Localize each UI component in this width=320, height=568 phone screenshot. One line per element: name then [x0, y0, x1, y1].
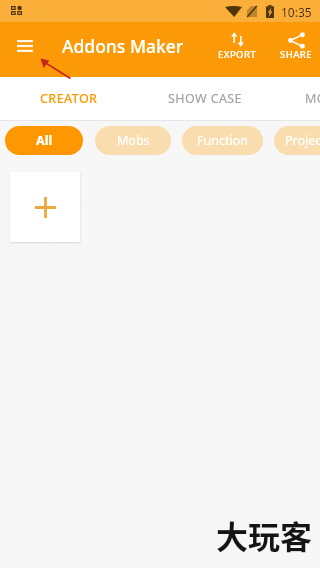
- button[interactable]: MOD MAKER: [277, 77, 320, 121]
- staticText: Projectile: [285, 132, 320, 149]
- staticText: Mobs: [117, 132, 150, 149]
- button[interactable]: Export: [209, 22, 265, 77]
- staticText: SHOW CASE: [168, 90, 242, 107]
- staticText: Function: [197, 132, 248, 149]
- staticText: CREATOR: [40, 90, 98, 107]
- staticText: MOD MAKER: [305, 90, 320, 107]
- staticText: SHARE: [280, 48, 312, 61]
- button[interactable]: Open navigation drawer: [8, 29, 42, 63]
- button[interactable]: CREATOR: [0, 77, 137, 121]
- staticText: 大玩客: [216, 512, 313, 558]
- button[interactable]: Create new addon: [10, 172, 80, 242]
- button[interactable]: All: [5, 126, 83, 155]
- button[interactable]: Share: [268, 22, 320, 77]
- button[interactable]: Mobs: [95, 126, 171, 155]
- button[interactable]: Function: [182, 126, 263, 155]
- button[interactable]: Projectile: [274, 126, 320, 155]
- staticText: All: [36, 132, 53, 149]
- staticText: 10:35: [281, 4, 312, 20]
- staticText: Addons Maker: [62, 34, 184, 58]
- button[interactable]: SHOW CASE: [137, 77, 272, 121]
- staticText: EXPORT: [218, 48, 257, 61]
